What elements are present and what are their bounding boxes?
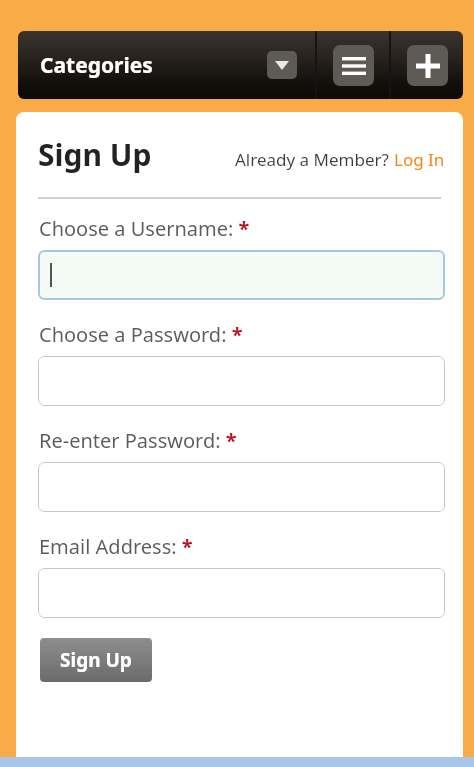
button[interactable] <box>38 250 445 300</box>
button[interactable]: Categories <box>18 31 315 99</box>
button[interactable]: Log In <box>394 148 445 171</box>
staticText: Choose a Password: * <box>39 321 243 348</box>
staticText: Re-enter Password: * <box>39 427 237 454</box>
staticText: Already a Member? <box>235 148 394 171</box>
staticText: Sign Up <box>38 134 152 175</box>
staticText: Sign Up <box>60 647 132 673</box>
staticText: Log In <box>394 148 445 171</box>
button[interactable] <box>38 356 445 406</box>
button[interactable] <box>38 568 445 618</box>
staticText: Email Address: * <box>39 533 193 560</box>
button[interactable]: Menu <box>317 31 389 99</box>
button[interactable] <box>38 462 445 512</box>
staticText: Choose a Username: * <box>39 215 250 242</box>
staticText: Categories <box>40 51 153 80</box>
button[interactable]: Sign Up <box>40 638 152 682</box>
button[interactable]: Add <box>391 31 463 99</box>
